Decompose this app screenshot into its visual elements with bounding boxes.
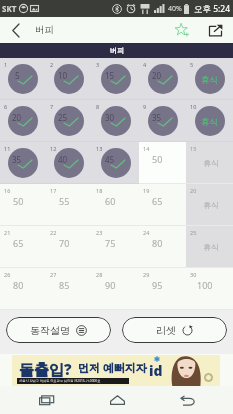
staticText: 19 bbox=[143, 187, 150, 194]
staticText: 40 bbox=[58, 154, 68, 165]
button[interactable]: 22 bbox=[46, 226, 92, 268]
button[interactable]: 29 bbox=[139, 268, 186, 310]
button[interactable]: 12 bbox=[46, 142, 92, 184]
button[interactable]: 1 bbox=[0, 58, 46, 100]
button[interactable]: 3 bbox=[92, 58, 139, 100]
button[interactable]: 8 bbox=[92, 100, 139, 142]
staticText: 9 bbox=[143, 103, 147, 110]
button[interactable]: Back bbox=[162, 386, 212, 414]
button[interactable]: 7 bbox=[46, 100, 92, 142]
staticText: 리셋 bbox=[156, 324, 176, 337]
staticText: 13 bbox=[96, 145, 103, 152]
staticText: 60 bbox=[105, 195, 116, 207]
button[interactable]: 17 bbox=[46, 184, 92, 226]
staticText: 85 bbox=[59, 279, 70, 291]
staticText: 20 bbox=[190, 187, 197, 194]
button[interactable]: 10 bbox=[186, 100, 233, 142]
staticText: id bbox=[149, 361, 163, 380]
button[interactable]: Recent apps bbox=[21, 386, 71, 414]
staticText: 8 bbox=[96, 103, 100, 110]
staticText: 20 bbox=[12, 112, 22, 123]
staticText: 14 bbox=[143, 145, 150, 152]
staticText: 16 bbox=[4, 187, 11, 194]
button[interactable]: Home bbox=[92, 386, 142, 414]
button[interactable]: 24 bbox=[139, 226, 186, 268]
staticText: 75 bbox=[105, 237, 116, 249]
button[interactable]: 6 bbox=[0, 100, 46, 142]
staticText: 30 bbox=[105, 112, 115, 123]
button[interactable]: 2 bbox=[46, 58, 92, 100]
button[interactable]: Back bbox=[0, 17, 30, 43]
staticText: 95 bbox=[152, 279, 163, 291]
button[interactable]: 23 bbox=[92, 226, 139, 268]
staticText: 25 bbox=[190, 229, 197, 236]
staticText: 65 bbox=[13, 237, 24, 249]
button[interactable]: 11 bbox=[0, 142, 46, 184]
button[interactable]: Share bbox=[202, 17, 228, 43]
button[interactable]: 15 bbox=[186, 142, 233, 184]
staticText: 서울시 강남구 역삼동 의료광고 심의필 제2015-가-0000호 bbox=[19, 379, 101, 383]
staticText: SKT bbox=[2, 3, 17, 14]
staticText: 28 bbox=[96, 271, 103, 278]
staticText: 50 bbox=[13, 195, 24, 207]
staticText: 21 bbox=[4, 229, 11, 236]
staticText: 2 bbox=[50, 61, 54, 68]
staticText: 27 bbox=[50, 271, 57, 278]
button[interactable]: 리셋 bbox=[122, 317, 227, 343]
staticText: 12 bbox=[50, 145, 57, 152]
button[interactable]: 동작설명 bbox=[6, 317, 111, 343]
button[interactable]: 28 bbox=[92, 268, 139, 310]
staticText: 90 bbox=[105, 279, 116, 291]
staticText: 5 bbox=[190, 61, 194, 68]
button[interactable]: 14 bbox=[139, 142, 186, 184]
button[interactable]: 21 bbox=[0, 226, 46, 268]
staticText: 65 bbox=[152, 195, 163, 207]
staticText: 26 bbox=[4, 271, 11, 278]
staticText: 1 bbox=[4, 61, 8, 68]
staticText: 35 bbox=[152, 112, 162, 123]
staticText: 24 bbox=[143, 229, 150, 236]
button[interactable]: 5 bbox=[186, 58, 233, 100]
staticText: 11 bbox=[4, 145, 11, 152]
staticText: 돌출입? bbox=[19, 359, 72, 379]
staticText: 40% bbox=[168, 4, 182, 14]
staticText: 10 bbox=[190, 103, 197, 110]
button[interactable]: 돌출입? bbox=[12, 355, 220, 386]
button[interactable]: 9 bbox=[139, 100, 186, 142]
button[interactable]: 26 bbox=[0, 268, 46, 310]
staticText: 15 bbox=[105, 70, 115, 81]
staticText: 3 bbox=[96, 61, 100, 68]
staticText: 22 bbox=[50, 229, 57, 236]
staticText: 버피 bbox=[35, 24, 54, 36]
staticText: 5 bbox=[15, 70, 20, 81]
staticText: 먼저 예뻐지자 bbox=[78, 360, 147, 375]
button[interactable]: 30 bbox=[186, 268, 233, 310]
staticText: 25 bbox=[58, 112, 68, 123]
staticText: 15 bbox=[190, 145, 197, 152]
staticText: 50 bbox=[152, 153, 163, 165]
staticText: 6 bbox=[4, 103, 8, 110]
staticText: 55 bbox=[59, 195, 70, 207]
staticText: 휴식 bbox=[201, 117, 218, 128]
button[interactable]: 18 bbox=[92, 184, 139, 226]
staticText: 29 bbox=[143, 271, 150, 278]
staticText: 버피 bbox=[110, 46, 124, 55]
button[interactable]: 13 bbox=[92, 142, 139, 184]
staticText: 4 bbox=[143, 61, 147, 68]
staticText: 휴식 bbox=[203, 200, 219, 210]
staticText: 45 bbox=[105, 154, 115, 165]
button[interactable]: 19 bbox=[139, 184, 186, 226]
staticText: 20 bbox=[152, 70, 162, 81]
button[interactable]: 25 bbox=[186, 226, 233, 268]
button[interactable]: Favorite bbox=[169, 17, 195, 43]
staticText: 80 bbox=[13, 279, 24, 291]
staticText: 100 bbox=[197, 279, 213, 291]
staticText: 동작설명 bbox=[30, 324, 70, 337]
button[interactable]: 27 bbox=[46, 268, 92, 310]
staticText: 7 bbox=[50, 103, 54, 110]
button[interactable]: 20 bbox=[186, 184, 233, 226]
button[interactable]: 16 bbox=[0, 184, 46, 226]
button[interactable]: 4 bbox=[139, 58, 186, 100]
staticText: 23 bbox=[96, 229, 103, 236]
staticText: 35 bbox=[12, 154, 22, 165]
